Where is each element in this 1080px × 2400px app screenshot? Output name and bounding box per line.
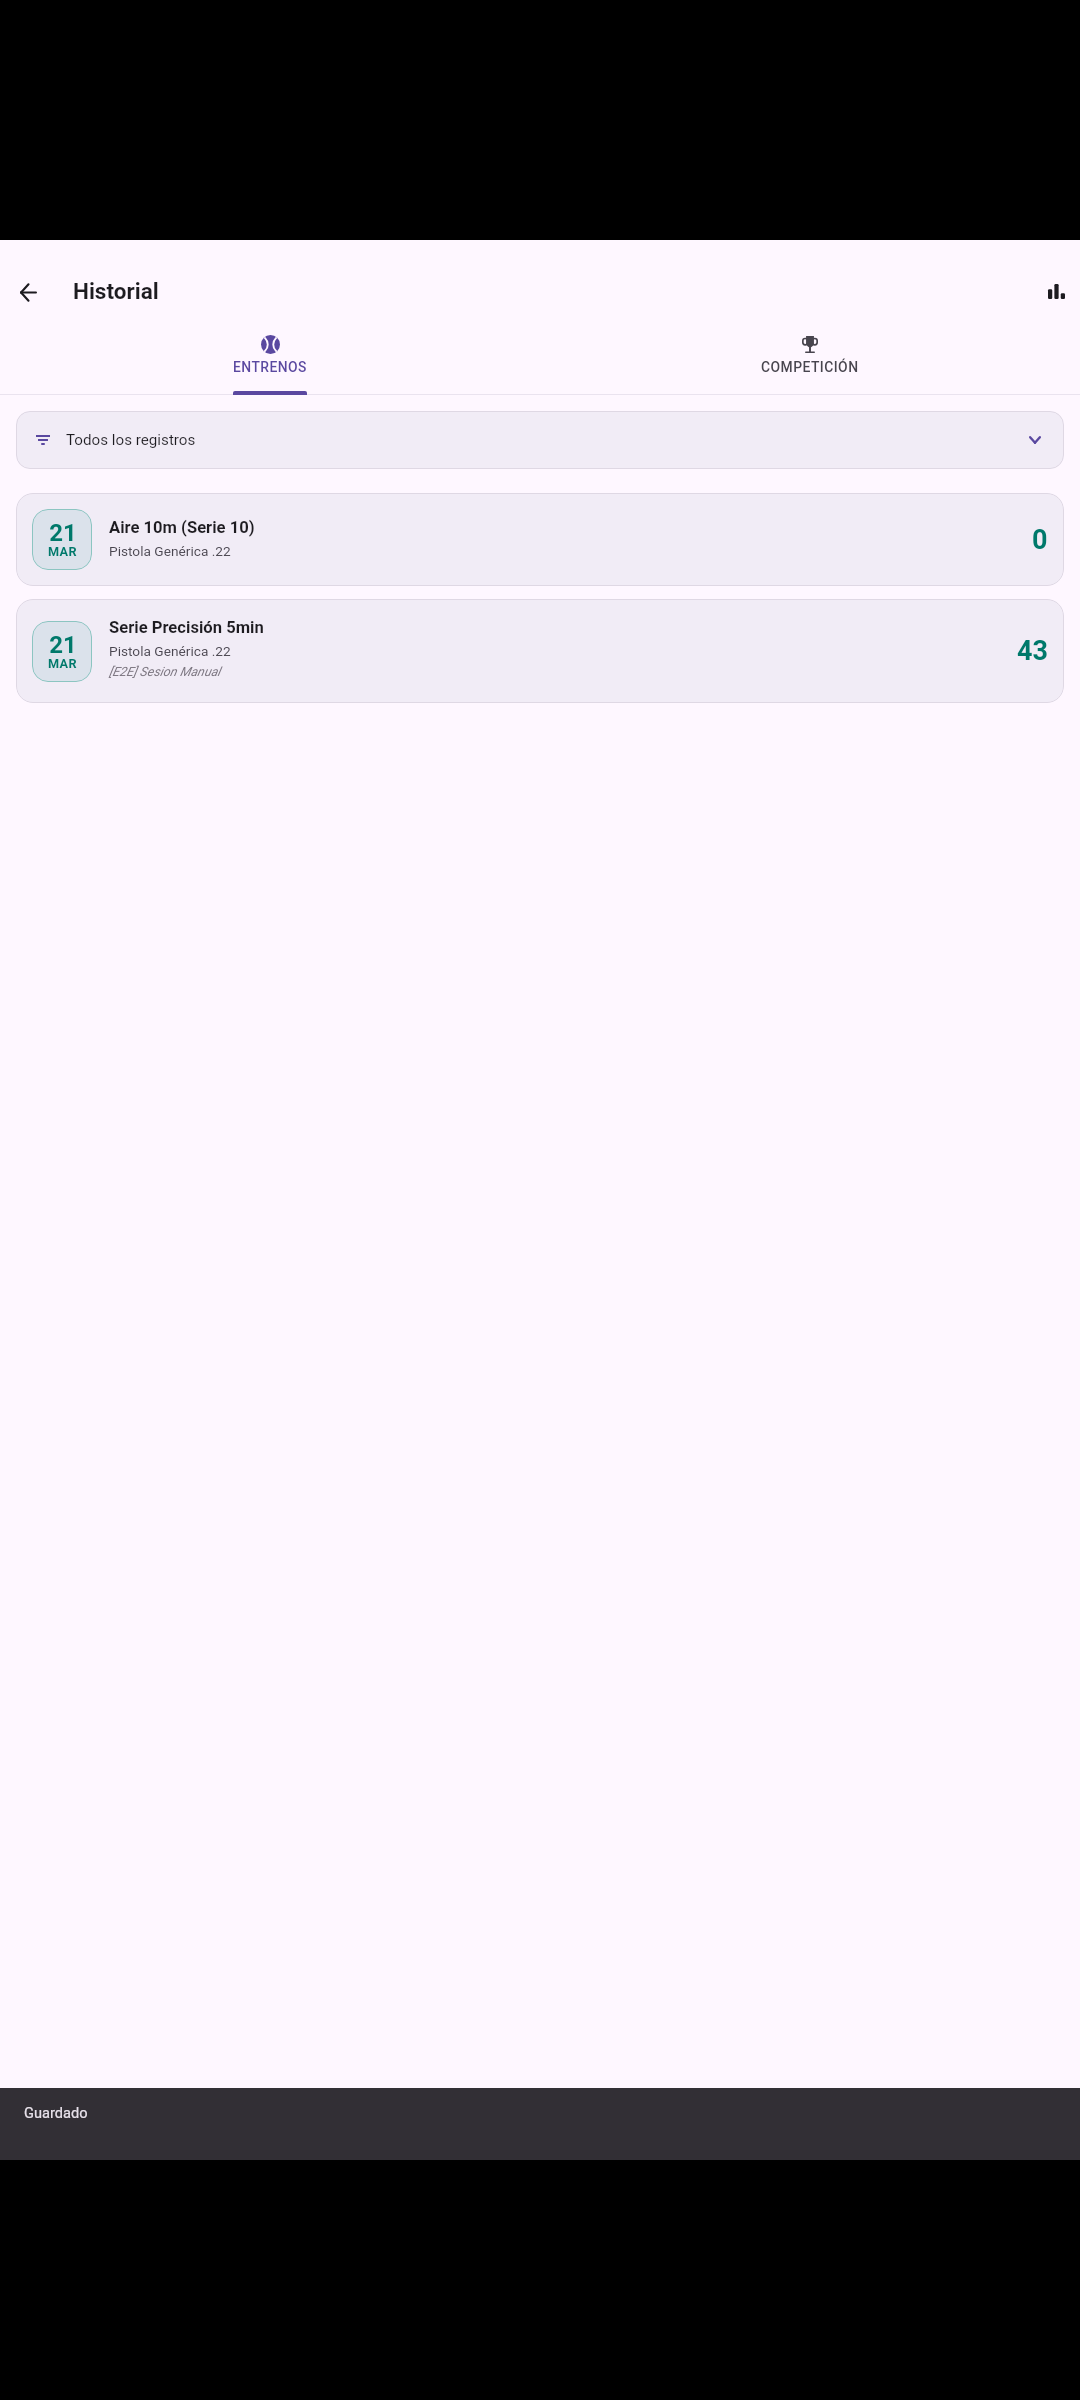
staticText: Aire 10m (Serie 10) [109, 518, 255, 537]
staticText: Todos los registros [66, 431, 196, 449]
button[interactable]: 21 [16, 599, 1064, 703]
staticText: Pistola Genérica .22 [109, 643, 231, 659]
staticText: Guardado [24, 2104, 88, 2121]
staticText: COMPETICIÓN [761, 359, 859, 375]
staticText: ENTRENOS [233, 359, 307, 375]
staticText: 21 [49, 519, 77, 547]
staticText: MAR [48, 544, 77, 559]
staticText: MAR [48, 656, 77, 671]
staticText: 21 [49, 631, 77, 659]
staticText: Pistola Genérica .22 [109, 543, 231, 559]
button[interactable]: Back [4, 268, 52, 316]
staticText: Historial [73, 278, 159, 304]
button[interactable]: COMPETICIÓN [540, 316, 1080, 394]
button[interactable]: ENTRENOS [0, 316, 540, 394]
staticText: 43 [1017, 635, 1048, 667]
button[interactable]: Statistics [1032, 266, 1080, 314]
staticText: [E2E] Sesion Manual [109, 664, 221, 679]
button[interactable]: 21 [16, 493, 1064, 586]
button[interactable]: Todos los registros [16, 411, 1064, 469]
staticText: 0 [1032, 524, 1048, 556]
staticText: Serie Precisión 5min [109, 618, 264, 637]
